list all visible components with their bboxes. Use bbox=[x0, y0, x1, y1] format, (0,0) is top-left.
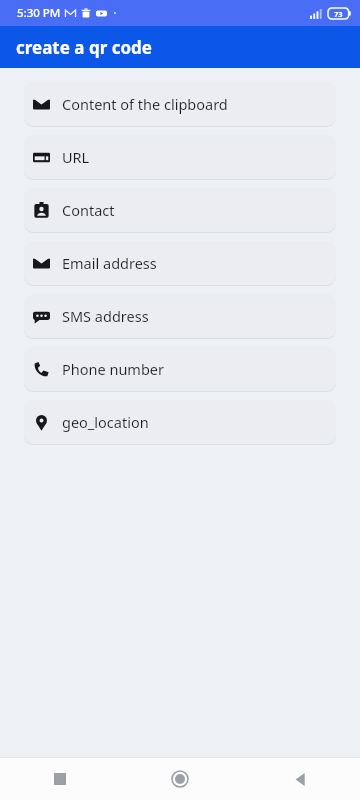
staticText: Content of the clipboard bbox=[62, 94, 228, 114]
staticText: Contact bbox=[62, 200, 115, 220]
staticText: URL bbox=[62, 147, 90, 167]
staticText: Email address bbox=[62, 253, 157, 273]
staticText: create a qr code bbox=[16, 36, 152, 59]
button[interactable]: Contact bbox=[24, 188, 336, 232]
button[interactable]: Phone number bbox=[24, 347, 336, 391]
button[interactable]: Back bbox=[240, 758, 360, 800]
staticText: SMS address bbox=[62, 306, 149, 326]
staticText: 5:30 PM bbox=[17, 5, 61, 21]
button[interactable]: URL bbox=[24, 135, 336, 179]
button[interactable]: Email address bbox=[24, 241, 336, 285]
button[interactable]: Content of the clipboard bbox=[24, 82, 336, 126]
staticText: geo_location bbox=[62, 412, 149, 432]
button[interactable]: SMS address bbox=[24, 294, 336, 338]
staticText: 73 bbox=[334, 9, 343, 19]
button[interactable]: Home bbox=[120, 758, 240, 800]
button[interactable]: Recent apps bbox=[0, 758, 120, 800]
button[interactable]: geo_location bbox=[24, 400, 336, 444]
staticText: Phone number bbox=[62, 359, 164, 379]
